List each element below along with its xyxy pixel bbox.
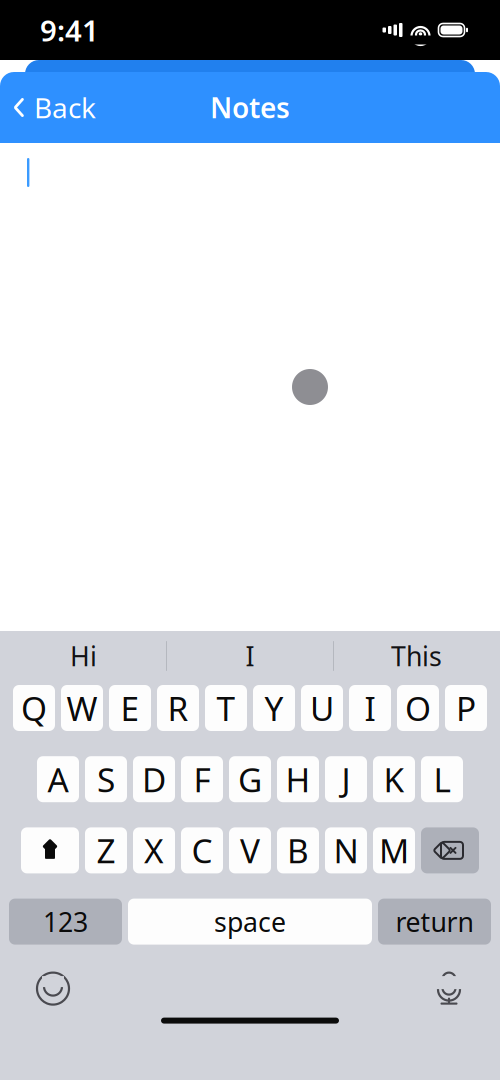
staticText: V xyxy=(240,828,260,873)
staticText: G xyxy=(238,757,262,801)
staticText: R xyxy=(167,686,188,730)
button[interactable]: F xyxy=(181,756,223,802)
button[interactable]: A xyxy=(37,756,79,802)
staticText: Q xyxy=(21,686,47,730)
staticText: I xyxy=(364,686,375,730)
staticText: X xyxy=(144,828,164,873)
button[interactable]: return xyxy=(378,899,491,945)
staticText: J xyxy=(341,757,350,801)
button[interactable]: T xyxy=(205,685,247,731)
staticText: Notes xyxy=(210,89,290,126)
staticText: A xyxy=(47,757,68,801)
button[interactable]: M xyxy=(373,827,415,873)
staticText: S xyxy=(97,757,115,801)
button[interactable]: I xyxy=(167,632,333,680)
button[interactable]: D xyxy=(133,756,175,802)
button[interactable]: Q xyxy=(13,685,55,731)
button[interactable]: Y xyxy=(253,685,295,731)
button[interactable]: H xyxy=(277,756,319,802)
staticText: W xyxy=(66,686,97,730)
button[interactable]: 123 xyxy=(9,899,122,945)
button[interactable]: O xyxy=(397,685,439,731)
staticText: L xyxy=(433,757,450,801)
staticText: This xyxy=(391,638,442,674)
staticText: F xyxy=(193,757,210,801)
staticText: C xyxy=(191,828,212,873)
button[interactable]: Emoji xyxy=(0,962,70,1016)
staticText: M xyxy=(379,828,409,873)
button[interactable]: W xyxy=(61,685,103,731)
button[interactable]: N xyxy=(325,827,367,873)
staticText: 9:41 xyxy=(40,10,99,49)
staticText: I xyxy=(245,638,254,674)
button[interactable]: Dictate xyxy=(434,961,500,1017)
button[interactable]: R xyxy=(157,685,199,731)
button[interactable]: Hi xyxy=(1,632,166,680)
button[interactable]: K xyxy=(373,756,415,802)
button[interactable]: Z xyxy=(85,827,127,873)
staticText: B xyxy=(287,828,309,873)
button[interactable]: U xyxy=(301,685,343,731)
button[interactable]: X xyxy=(133,827,175,873)
staticText: N xyxy=(333,828,358,873)
button[interactable]: J xyxy=(325,756,367,802)
staticText: Z xyxy=(96,828,115,873)
staticText: T xyxy=(216,686,235,730)
staticText: U xyxy=(310,686,334,730)
button[interactable]: Delete xyxy=(421,827,479,873)
button[interactable]: S xyxy=(85,756,127,802)
staticText: 123 xyxy=(43,904,88,939)
staticText: Hi xyxy=(70,638,97,674)
button[interactable]: Back xyxy=(0,81,96,134)
staticText: P xyxy=(456,686,476,730)
staticText: E xyxy=(120,686,139,730)
button[interactable]: G xyxy=(229,756,271,802)
button[interactable]: C xyxy=(181,827,223,873)
staticText: K xyxy=(383,757,404,801)
button[interactable]: V xyxy=(229,827,271,873)
staticText: return xyxy=(395,904,473,939)
button[interactable]: P xyxy=(445,685,487,731)
button[interactable]: Shift xyxy=(21,827,79,873)
button[interactable]: E xyxy=(109,685,151,731)
button[interactable]: I xyxy=(349,685,391,731)
staticText: D xyxy=(142,757,166,801)
button[interactable]: B xyxy=(277,827,319,873)
staticText: Y xyxy=(264,686,283,730)
button[interactable]: This xyxy=(334,632,499,680)
button[interactable]: L xyxy=(421,756,463,802)
staticText: Back xyxy=(34,89,96,126)
staticText: O xyxy=(405,686,431,730)
staticText: H xyxy=(285,757,310,801)
button[interactable]: space xyxy=(128,899,372,945)
staticText: space xyxy=(214,904,286,939)
